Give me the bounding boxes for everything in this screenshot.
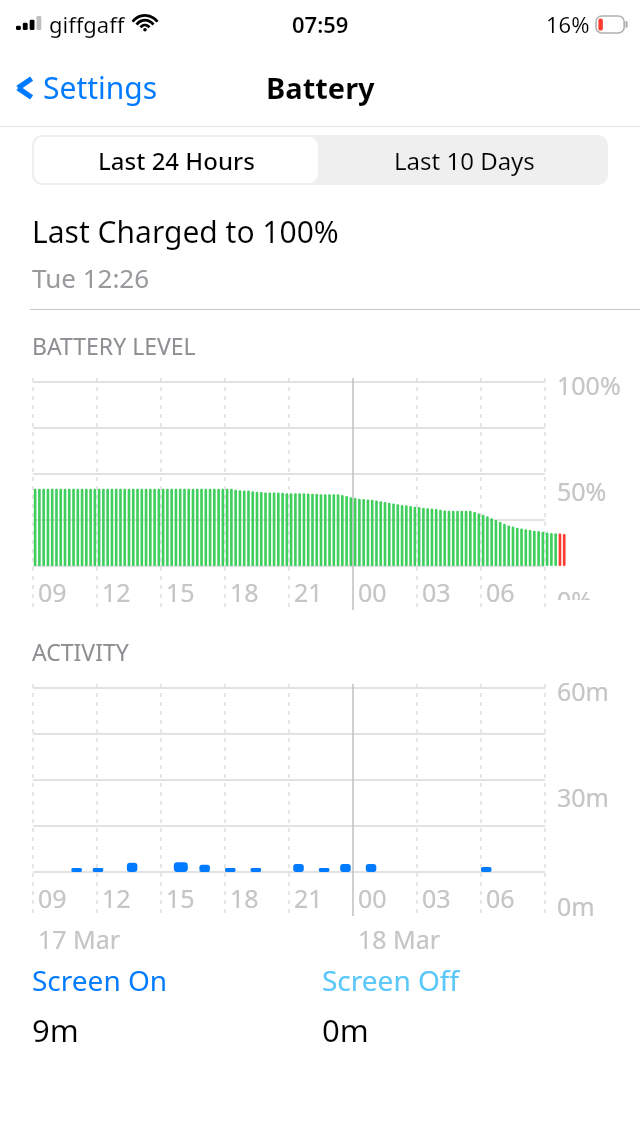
staticText: 60m — [557, 674, 609, 708]
staticText: 17 Mar — [38, 922, 121, 956]
staticText: Last 24 Hours — [98, 144, 255, 177]
staticText: 30m — [557, 780, 609, 814]
button[interactable]: Screen On — [32, 961, 322, 1051]
staticText: 12 — [102, 881, 131, 915]
staticText: 03 — [422, 881, 451, 915]
staticText: 100% — [557, 368, 621, 402]
staticText: 15 — [166, 575, 195, 609]
staticText: 9m — [32, 1009, 79, 1051]
staticText: Screen On — [32, 961, 168, 999]
staticText: 16% — [546, 9, 590, 39]
staticText: 18 — [230, 575, 259, 609]
staticText: 09 — [38, 881, 67, 915]
staticText: 06 — [486, 881, 515, 915]
button[interactable]: Last 24 Hours — [34, 137, 318, 183]
staticText: Tue 12:26 — [32, 260, 150, 295]
staticText: 0m — [557, 889, 595, 923]
staticText: Screen Off — [322, 961, 460, 999]
staticText: 50% — [557, 474, 607, 508]
staticText: 0m — [322, 1009, 369, 1051]
staticText: 00 — [358, 575, 387, 609]
button[interactable]: Last 10 Days — [320, 135, 608, 185]
staticText: Battery — [266, 68, 375, 107]
staticText: 21 — [294, 575, 323, 609]
staticText: Last Charged to 100% — [32, 211, 339, 252]
staticText: 00 — [358, 881, 387, 915]
staticText: 06 — [486, 575, 515, 609]
staticText: 03 — [422, 575, 451, 609]
staticText: ACTIVITY — [32, 636, 129, 667]
staticText: Last 10 Days — [394, 144, 535, 177]
staticText: 15 — [166, 881, 195, 915]
staticText: 12 — [102, 575, 131, 609]
button[interactable]: Settings — [14, 67, 158, 108]
staticText: Settings — [43, 67, 158, 108]
staticText: 09 — [38, 575, 67, 609]
staticText: 18 Mar — [358, 922, 441, 956]
staticText: 21 — [294, 881, 323, 915]
staticText: 07:59 — [292, 9, 349, 39]
staticText: BATTERY LEVEL — [32, 330, 196, 361]
staticText: 0% — [557, 583, 593, 600]
staticText: 18 — [230, 881, 259, 915]
staticText: giffgaff — [49, 9, 125, 39]
button[interactable]: Screen Off — [322, 961, 460, 1051]
